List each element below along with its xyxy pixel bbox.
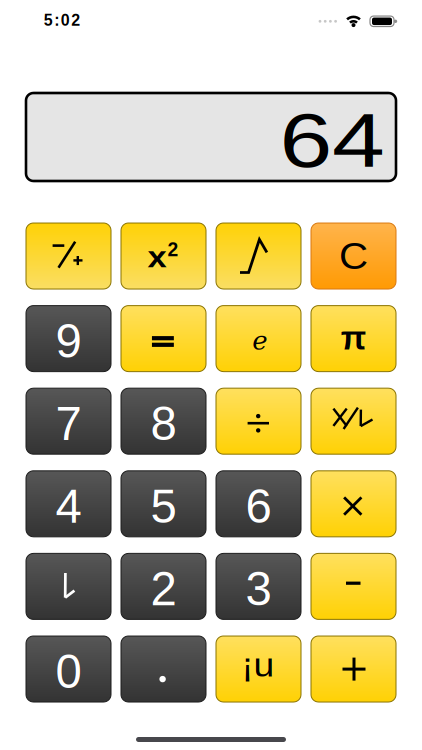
button[interactable]: 8 (121, 388, 206, 454)
staticText: 0 (55, 645, 81, 698)
staticText: e (252, 326, 267, 356)
staticText: 5:02 (44, 11, 80, 29)
button[interactable] (26, 553, 111, 619)
button[interactable] (311, 471, 396, 537)
button[interactable]: 7 (26, 388, 111, 454)
button[interactable] (121, 636, 206, 702)
button[interactable]: 9 (26, 306, 111, 372)
staticText: ¡u (243, 646, 273, 684)
button[interactable] (311, 388, 396, 454)
button[interactable] (216, 223, 301, 289)
staticText: 5 (150, 480, 176, 533)
button[interactable]: 5 (121, 471, 206, 537)
button[interactable]: 2 (121, 553, 206, 619)
staticText: x (149, 241, 165, 273)
staticText: 2 (167, 239, 178, 260)
staticText: 4 (55, 480, 81, 533)
button[interactable]: ¡u (216, 636, 301, 702)
button[interactable] (26, 223, 111, 289)
staticText: C (340, 235, 367, 277)
staticText: π (341, 319, 367, 357)
staticText: 8 (150, 397, 176, 450)
button[interactable] (121, 306, 206, 372)
button[interactable]: x (121, 223, 206, 289)
button[interactable] (311, 636, 396, 702)
button[interactable]: 3 (216, 553, 301, 619)
staticText: 6 (245, 480, 271, 533)
staticText: 3 (245, 562, 271, 615)
button[interactable] (311, 553, 396, 619)
staticText: 64 (290, 98, 374, 183)
button[interactable]: π (311, 306, 396, 372)
button[interactable]: 6 (216, 471, 301, 537)
button[interactable]: 4 (26, 471, 111, 537)
staticText: 2 (150, 562, 176, 615)
button[interactable]: 0 (26, 636, 111, 702)
button[interactable]: C (311, 223, 396, 289)
staticText: 7 (55, 397, 81, 450)
staticText: 9 (55, 315, 81, 368)
button[interactable] (216, 388, 301, 454)
button[interactable]: e (216, 306, 301, 372)
